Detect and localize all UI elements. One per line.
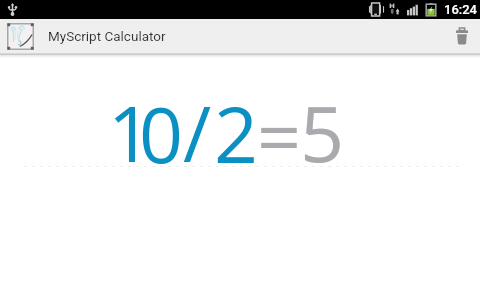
staticText: MyScript Calculator xyxy=(48,28,166,44)
staticText: 5 xyxy=(300,80,345,185)
staticText: 16:24 xyxy=(444,2,477,17)
staticText: = xyxy=(257,83,302,188)
staticText: / xyxy=(183,80,212,185)
staticText: 1 xyxy=(108,80,153,185)
staticText: 2 xyxy=(214,81,259,186)
button[interactable]: Delete xyxy=(444,19,480,53)
staticText: 0 xyxy=(139,81,184,186)
button[interactable]: MyScript Calculator xyxy=(7,19,166,53)
